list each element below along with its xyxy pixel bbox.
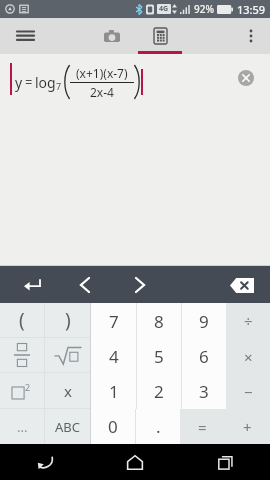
button[interactable]: 8 (137, 303, 181, 339)
button[interactable]: . (136, 409, 180, 444)
staticText: y (15, 73, 23, 92)
staticText: 5 (154, 345, 164, 368)
button[interactable]: Backspace (224, 271, 260, 299)
staticText: ÷ (244, 311, 253, 331)
other: Square root (55, 346, 81, 365)
button[interactable]: + (225, 409, 270, 444)
button[interactable]: ... (0, 409, 44, 444)
button[interactable]: = (180, 409, 225, 444)
button[interactable]: 7 (91, 303, 136, 339)
button[interactable]: Recents (180, 444, 270, 480)
button[interactable]: Square root (45, 338, 90, 372)
button[interactable]: Fraction (0, 338, 44, 372)
staticText: ( (19, 307, 25, 333)
staticText: 4 (109, 345, 119, 368)
staticText: 7 (109, 310, 119, 333)
staticText: 13:59 (237, 2, 266, 17)
other: Square (11, 381, 33, 401)
button[interactable]: ) (45, 303, 90, 337)
staticText: 0 (108, 415, 118, 438)
button[interactable]: 3 (182, 374, 226, 409)
button[interactable]: Calculator (138, 18, 182, 54)
staticText: 9 (199, 310, 209, 333)
button[interactable]: 5 (137, 339, 181, 374)
staticText: 4G (159, 4, 169, 14)
button[interactable]: Square (0, 373, 44, 408)
button[interactable]: × (226, 339, 270, 374)
button[interactable]: Camera (86, 18, 138, 54)
staticText: + (243, 417, 252, 437)
button[interactable]: Clear (236, 68, 256, 88)
staticText: 6 (199, 345, 209, 368)
staticText: × (244, 347, 253, 367)
button[interactable]: ( (0, 303, 44, 337)
button[interactable]: 9 (182, 303, 226, 339)
staticText: = (25, 73, 33, 91)
button[interactable]: 4 (91, 339, 136, 374)
button[interactable]: Home (90, 444, 180, 480)
staticText: ... (17, 418, 28, 436)
staticText: ) (65, 307, 71, 333)
staticText: 8 (154, 310, 164, 333)
button[interactable]: 2 (137, 374, 181, 409)
button[interactable]: ÷ (226, 303, 270, 339)
staticText: 2x-4 (90, 84, 114, 100)
staticText: x (64, 381, 72, 401)
staticText: 92% (194, 2, 214, 16)
staticText: ABC (55, 418, 80, 436)
staticText: 2 (25, 381, 31, 393)
button[interactable]: − (226, 374, 270, 409)
staticText: = (198, 417, 207, 437)
button[interactable]: 0 (91, 409, 135, 444)
button[interactable]: Menu (0, 18, 50, 54)
other: Fraction (14, 343, 30, 367)
button[interactable]: More options (232, 18, 270, 54)
button[interactable]: Enter (12, 269, 52, 301)
button[interactable]: x (45, 373, 90, 408)
button[interactable]: 6 (182, 339, 226, 374)
staticText: . (156, 415, 161, 438)
button[interactable]: 1 (91, 374, 136, 409)
staticText: 7 (56, 80, 62, 92)
staticText: 3 (199, 380, 209, 403)
staticText: − (244, 382, 253, 402)
button[interactable]: Next (120, 269, 160, 301)
button[interactable]: ABC (45, 409, 90, 444)
staticText: log (35, 73, 56, 92)
staticText: (x+1)(x-7) (76, 65, 128, 81)
staticText: 1 (109, 380, 119, 403)
button[interactable]: Previous (65, 269, 105, 301)
button[interactable]: Back (0, 444, 90, 480)
staticText: 2 (154, 380, 164, 403)
